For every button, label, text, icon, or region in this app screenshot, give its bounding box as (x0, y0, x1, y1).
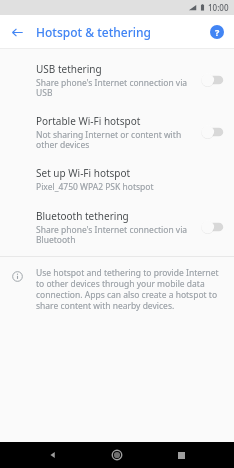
button[interactable]: Portable Wi-Fi hotspot toggle (196, 122, 226, 142)
staticText: Share phone's Internet connection via Bl… (36, 224, 190, 245)
button[interactable]: Back (44, 446, 62, 464)
button[interactable]: USB tethering (0, 54, 234, 106)
button[interactable]: Bluetooth tethering (0, 201, 234, 253)
staticText: Not sharing Internet or content with oth… (36, 129, 190, 150)
staticText: ? (215, 26, 220, 38)
staticText: Share phone's Internet connection via US… (36, 77, 190, 98)
staticText: USB tethering (36, 62, 102, 76)
staticText: Bluetooth tethering (36, 209, 129, 223)
button[interactable]: Bluetooth tethering toggle (196, 217, 226, 237)
staticText: Pixel_4750 WPA2 PSK hotspot (36, 181, 154, 193)
staticText: Portable Wi-Fi hotspot (36, 114, 141, 128)
button[interactable]: Home (108, 446, 126, 464)
button[interactable]: USB tethering toggle (196, 70, 226, 90)
button[interactable]: Set up Wi-Fi hotspot (0, 158, 234, 201)
staticText: Use hotspot and tethering to provide Int… (36, 267, 224, 311)
button[interactable]: Recent apps (172, 446, 190, 464)
staticText: 10:00 (208, 2, 229, 13)
button[interactable]: Help (207, 22, 227, 42)
staticText: Set up Wi-Fi hotspot (36, 166, 131, 180)
button[interactable]: Portable Wi-Fi hotspot (0, 106, 234, 158)
button[interactable]: Back (6, 21, 28, 43)
staticText: Hotspot & tethering (36, 24, 151, 40)
